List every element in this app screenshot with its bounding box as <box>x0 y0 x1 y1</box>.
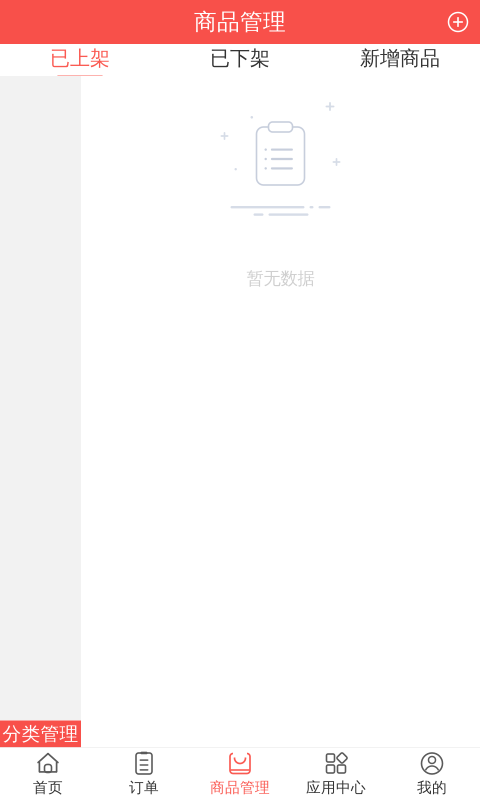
button[interactable]: 新增 <box>436 0 480 44</box>
staticText: 首页 <box>33 778 63 796</box>
button[interactable]: 我的 <box>384 749 480 799</box>
button[interactable]: 已下架 <box>160 44 320 76</box>
staticText: 订单 <box>129 778 159 796</box>
staticText: 我的 <box>417 778 447 796</box>
button[interactable]: 订单 <box>96 749 192 799</box>
button[interactable]: 首页 <box>0 749 96 799</box>
staticText: 分类管理 <box>2 722 78 745</box>
staticText: 应用中心 <box>306 778 366 796</box>
staticText: 暂无数据 <box>246 268 314 289</box>
staticText: 新增商品 <box>360 46 440 71</box>
button[interactable]: 应用中心 <box>288 749 384 799</box>
button[interactable]: 分类管理 <box>0 720 81 747</box>
staticText: 商品管理 <box>194 8 286 36</box>
button[interactable]: 新增商品 <box>320 44 480 76</box>
button[interactable]: 已上架 <box>0 44 160 76</box>
staticText: 已下架 <box>210 46 270 71</box>
staticText: 已上架 <box>50 46 110 71</box>
staticText: 商品管理 <box>210 778 270 796</box>
button[interactable]: 商品管理 <box>192 749 288 799</box>
